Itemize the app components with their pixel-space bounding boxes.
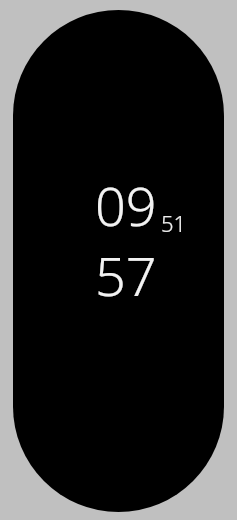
button[interactable]: Hours, 09 <box>13 10 224 512</box>
button[interactable]: Hours, 09 <box>95 168 157 242</box>
staticText: 57 <box>95 238 157 312</box>
button[interactable]: Seconds, 51 <box>161 208 187 238</box>
staticText: 51 <box>161 208 187 238</box>
button[interactable]: Minutes, 57 <box>95 238 157 312</box>
staticText: 09 <box>95 168 157 242</box>
